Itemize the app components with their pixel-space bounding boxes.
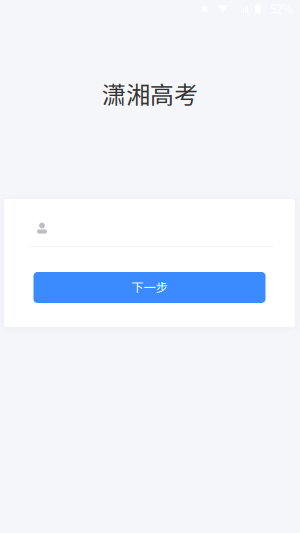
staticText: 潇湘高考 (102, 76, 198, 111)
staticText: 下一步 (131, 277, 167, 295)
button[interactable]: 下一步 (33, 272, 265, 303)
